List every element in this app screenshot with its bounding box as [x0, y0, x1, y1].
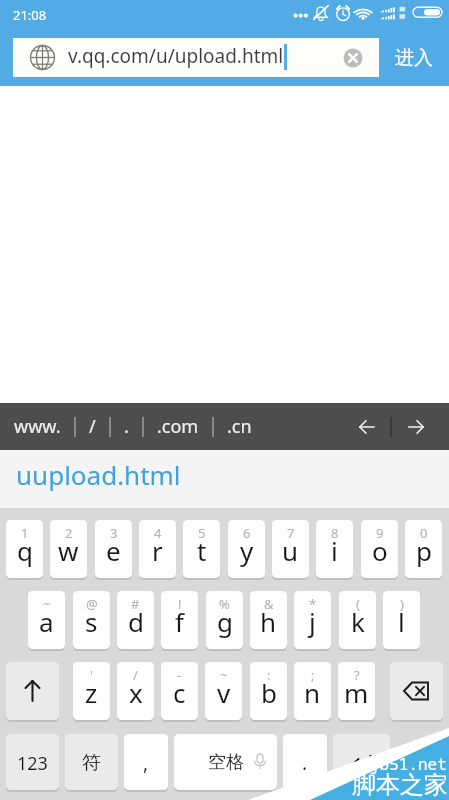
staticText: .cn — [227, 414, 252, 439]
button[interactable]: uupload.html — [0, 450, 449, 508]
staticText: j — [309, 604, 316, 639]
button[interactable]: v.qq.com/u/upload.html — [13, 38, 379, 77]
button[interactable]: s — [73, 591, 110, 649]
staticText: p — [416, 533, 432, 568]
button[interactable]: u — [272, 520, 309, 578]
button[interactable]: 空格 — [174, 734, 277, 790]
staticText: v — [217, 675, 231, 710]
staticText: . — [124, 414, 129, 439]
staticText: www. — [14, 414, 61, 439]
button[interactable]: x — [117, 662, 154, 720]
staticText: g — [217, 604, 233, 639]
button[interactable]: . — [283, 734, 327, 790]
staticText: : — [267, 666, 271, 684]
button[interactable]: b — [250, 662, 287, 720]
staticText: t — [197, 533, 207, 568]
button[interactable]: .com — [157, 414, 199, 439]
staticText: jb51.net — [370, 753, 447, 775]
button[interactable]: t — [183, 520, 220, 578]
staticText: d — [128, 604, 144, 639]
staticText: w — [58, 533, 79, 568]
button[interactable]: , — [124, 734, 168, 790]
staticText: 5 — [198, 524, 206, 542]
staticText: * — [309, 595, 317, 613]
button[interactable]: n — [294, 662, 331, 720]
staticText: 123 — [17, 751, 48, 776]
staticText: # — [131, 595, 140, 613]
button[interactable]: g — [206, 591, 243, 649]
button[interactable]: / — [89, 414, 96, 439]
button[interactable]: l — [383, 591, 420, 649]
staticText: 21:08 — [13, 6, 47, 24]
staticText: ~ — [43, 595, 51, 613]
button[interactable]: i — [316, 520, 353, 578]
staticText: z — [85, 675, 98, 710]
button[interactable]: 进入 — [379, 37, 449, 78]
button[interactable]: y — [228, 520, 265, 578]
button[interactable]: a — [28, 591, 65, 649]
staticText: 脚本之家 — [352, 770, 448, 800]
button[interactable]: j — [294, 591, 331, 649]
staticText: uupload.html — [16, 457, 181, 492]
staticText: l — [398, 604, 405, 639]
staticText: 6 — [243, 524, 251, 542]
staticText: k — [351, 604, 365, 639]
button[interactable]: h — [250, 591, 287, 649]
button[interactable]: o — [361, 520, 398, 578]
button[interactable]: 符 — [65, 734, 118, 790]
button[interactable]: Backspace — [390, 662, 443, 720]
button[interactable]: m — [338, 662, 375, 720]
staticText: 进入 — [395, 46, 433, 70]
button[interactable]: p — [405, 520, 442, 578]
button[interactable]: r — [139, 520, 176, 578]
staticText: ~ — [220, 666, 228, 684]
button[interactable]: . — [124, 414, 129, 439]
staticText: .com — [157, 414, 199, 439]
staticText: e — [106, 533, 121, 568]
staticText: ? — [354, 666, 360, 684]
button[interactable]: www. — [14, 414, 61, 439]
staticText: - — [177, 666, 182, 684]
button[interactable]: k — [339, 591, 376, 649]
staticText: r — [152, 533, 163, 568]
staticText: 2 — [65, 524, 73, 542]
button[interactable]: q — [6, 520, 43, 578]
button[interactable]: Enter — [333, 734, 390, 790]
staticText: b — [261, 675, 277, 710]
staticText: ) — [400, 595, 404, 613]
button[interactable]: .cn — [227, 414, 252, 439]
staticText: % — [219, 595, 230, 613]
button[interactable]: w — [50, 520, 87, 578]
staticText: m — [344, 675, 369, 710]
staticText: q — [17, 533, 33, 568]
button[interactable]: z — [73, 662, 110, 720]
staticText: 9 — [376, 524, 384, 542]
button[interactable]: Previous — [351, 411, 382, 442]
staticText: 1 — [21, 524, 29, 542]
button[interactable]: c — [161, 662, 198, 720]
staticText: u — [282, 533, 299, 568]
staticText: , — [143, 750, 149, 776]
staticText: / — [133, 666, 138, 684]
button[interactable]: Clear text — [341, 46, 365, 70]
staticText: s — [85, 604, 98, 639]
staticText: / — [89, 414, 96, 439]
staticText: v.qq.com/u/upload.html — [68, 43, 284, 69]
staticText: h — [260, 604, 277, 639]
button[interactable]: v — [205, 662, 242, 720]
button[interactable]: Shift — [6, 662, 59, 720]
button[interactable]: 123 — [6, 734, 59, 790]
staticText: c — [173, 675, 186, 710]
button[interactable]: e — [95, 520, 132, 578]
staticText: 8 — [331, 524, 339, 542]
staticText: x — [129, 675, 143, 710]
staticText: n — [304, 675, 321, 710]
staticText: & — [264, 595, 274, 613]
button[interactable]: d — [117, 591, 154, 649]
staticText: f — [175, 604, 184, 639]
staticText: i — [331, 533, 338, 568]
staticText: ! — [178, 595, 182, 613]
button[interactable]: Next — [400, 411, 431, 442]
button[interactable]: f — [161, 591, 198, 649]
staticText: 空格 — [208, 751, 244, 774]
